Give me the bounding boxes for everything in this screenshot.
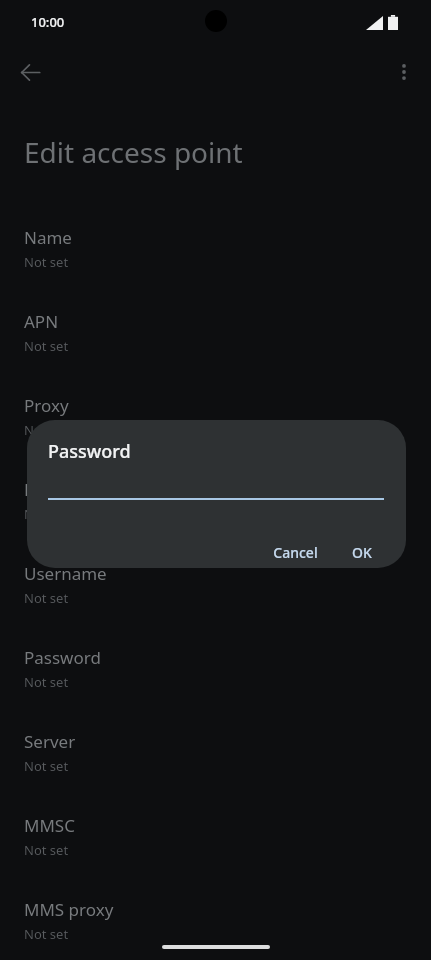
staticText: Not set [24,841,69,859]
staticText: MMSC [24,814,75,837]
button[interactable]: OK [342,538,382,567]
staticText: Server [24,730,76,753]
staticText: 10:00 [31,13,65,31]
staticText: Not set [24,505,69,523]
staticText: Cancel [273,543,318,562]
staticText: Not set [24,253,69,271]
staticText: OK [352,543,372,562]
staticText: Not set [24,337,69,355]
button[interactable]: Password [0,634,431,703]
staticText: Name [24,226,72,249]
button[interactable]: More options [384,52,424,92]
button[interactable]: Port [0,466,431,535]
button[interactable]: Username [0,550,431,619]
staticText: Not set [24,925,69,943]
staticText: Not set [24,757,69,775]
staticText: Proxy [24,394,69,417]
staticText: Not set [24,589,69,607]
staticText: Edit access point [24,133,243,171]
button[interactable]: Server [0,718,431,787]
button[interactable]: Cancel [263,538,328,567]
staticText: APN [24,310,59,333]
button[interactable]: Proxy [0,382,431,451]
staticText: Not set [24,673,69,691]
staticText: Port [24,478,58,501]
button[interactable]: APN [0,298,431,367]
staticText: Password [24,646,101,669]
button[interactable]: MMSC [0,802,431,871]
staticText: Username [24,562,107,585]
button[interactable]: Back [10,52,50,92]
button[interactable]: Name [0,214,431,283]
staticText: Not set [24,421,69,439]
button[interactable]: MMS proxy [0,886,431,955]
staticText: MMS proxy [24,898,114,921]
staticText: Password [48,439,131,464]
